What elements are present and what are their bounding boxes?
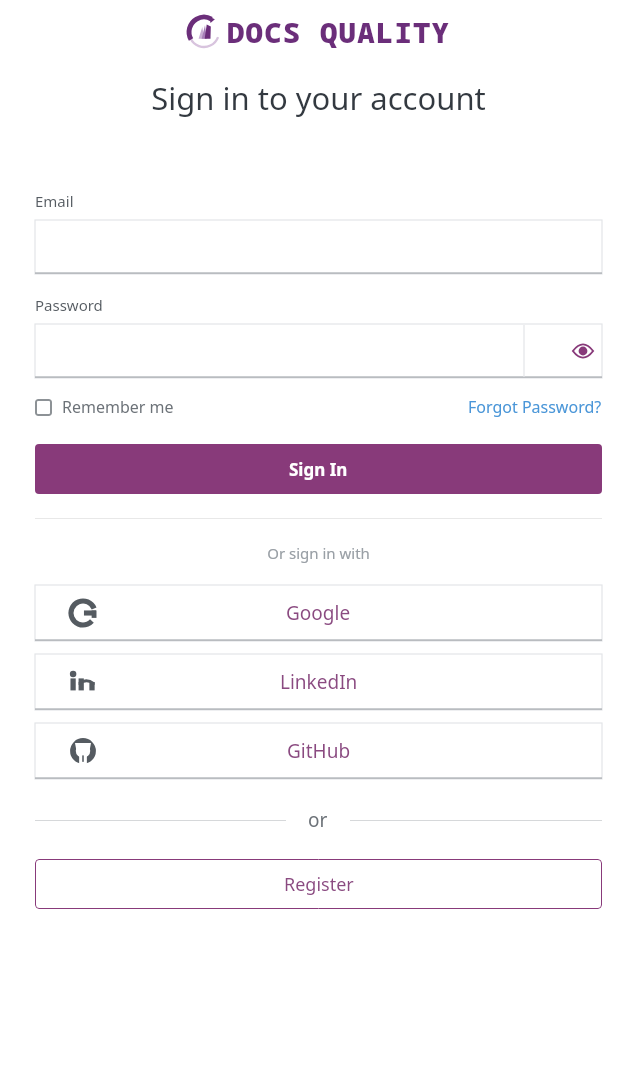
button[interactable]: Show password <box>563 325 602 377</box>
staticText: Register <box>284 872 354 897</box>
staticText: DOCS QUALITY <box>227 12 451 51</box>
staticText: GitHub <box>287 738 351 764</box>
button[interactable]: Google <box>35 585 602 641</box>
staticText: LinkedIn <box>280 669 358 695</box>
other: GitHub <box>68 736 98 766</box>
button[interactable] <box>35 220 602 274</box>
staticText: or <box>308 807 328 833</box>
other: LinkedIn <box>68 667 98 697</box>
button[interactable]: Forgot Password? <box>468 396 602 418</box>
other: Google <box>68 598 98 628</box>
staticText: Password <box>35 295 103 315</box>
staticText: Remember me <box>62 396 174 418</box>
button[interactable]: Register <box>35 859 602 909</box>
button[interactable]: Sign In <box>35 444 602 494</box>
staticText: Or sign in with <box>35 543 602 563</box>
button[interactable]: Remember me <box>35 396 174 418</box>
button[interactable]: LinkedIn <box>35 654 602 710</box>
staticText: Sign in to your account <box>35 77 602 119</box>
staticText: Google <box>286 600 351 626</box>
staticText: Email <box>35 191 74 211</box>
staticText: Sign In <box>289 458 348 481</box>
button[interactable]: GitHub <box>35 723 602 779</box>
